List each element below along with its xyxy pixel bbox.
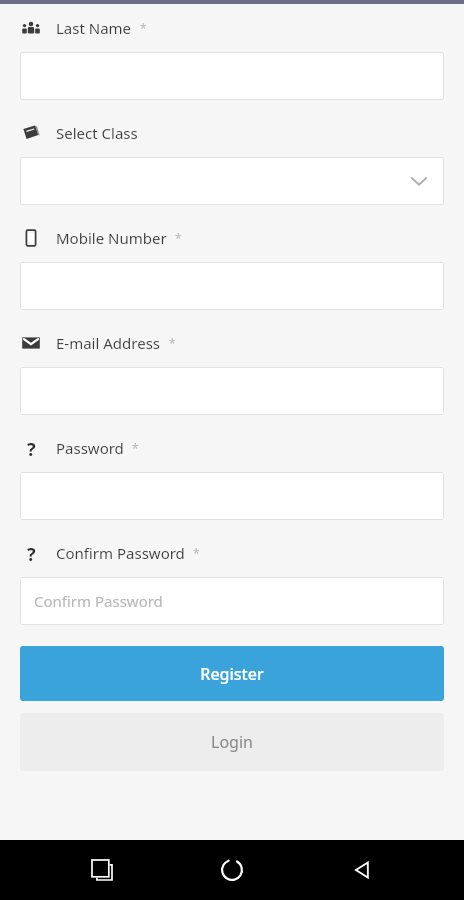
- staticText: Select Class: [56, 123, 138, 143]
- button[interactable]: [20, 472, 444, 520]
- staticText: *: [193, 545, 200, 561]
- staticText: Password: [56, 438, 124, 458]
- staticText: *: [175, 230, 182, 246]
- button[interactable]: Register: [20, 646, 444, 701]
- button[interactable]: Home: [203, 841, 261, 899]
- button[interactable]: Recent apps: [73, 841, 131, 899]
- staticText: E-mail Address: [56, 333, 161, 353]
- staticText: Mobile Number: [56, 228, 167, 248]
- button[interactable]: [20, 157, 444, 205]
- button[interactable]: [20, 367, 444, 415]
- staticText: *: [169, 335, 176, 351]
- button[interactable]: [20, 262, 444, 310]
- button[interactable]: [20, 52, 444, 100]
- button[interactable]: Back: [334, 841, 392, 899]
- staticText: Confirm Password: [56, 543, 185, 563]
- button[interactable]: Confirm Password: [20, 577, 444, 625]
- staticText: Login: [211, 731, 253, 753]
- staticText: ?: [27, 542, 36, 564]
- staticText: *: [140, 20, 147, 36]
- staticText: ?: [27, 437, 36, 459]
- staticText: Register: [200, 663, 264, 685]
- button[interactable]: Login: [20, 713, 444, 771]
- staticText: *: [132, 440, 139, 456]
- staticText: Confirm Password: [34, 591, 163, 611]
- staticText: Last Name: [56, 18, 132, 38]
